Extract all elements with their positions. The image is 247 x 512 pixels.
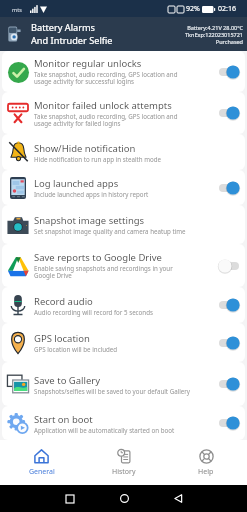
staticText: Include launched apps in history report — [34, 190, 149, 198]
staticText: Take snapshot, audio recording, GPS loca… — [34, 70, 191, 86]
staticText: Snapshots/selfies will be saved to your … — [34, 387, 191, 395]
staticText: 02:16 — [218, 4, 236, 14]
button[interactable]: Switch on — [217, 376, 241, 392]
staticText: Take snapshot, audio recording, GPS loca… — [34, 112, 191, 128]
staticText: Save to Gallery — [34, 374, 101, 387]
button[interactable]: Switch on — [217, 297, 241, 313]
button[interactable]: Log launched apps — [2, 170, 245, 205]
button[interactable]: Switch off — [217, 258, 241, 274]
staticText: Application will be automatically starte… — [34, 426, 175, 434]
staticText: Hide notification to run app in stealth … — [34, 155, 162, 163]
staticText: Enable saving snapshots and recordings i… — [34, 264, 191, 280]
button[interactable]: Switch on — [217, 180, 241, 196]
staticText: Set snapshot image quality and camera he… — [34, 227, 186, 235]
staticText: History — [112, 467, 136, 477]
staticText: And Intruder Selfie — [31, 34, 113, 47]
staticText: Audio recording will record for 5 second… — [34, 308, 153, 316]
button[interactable]: General — [0, 440, 83, 485]
button[interactable]: Recents — [43, 495, 97, 503]
button[interactable]: Save to Gallery — [2, 362, 245, 406]
staticText: Purchased — [215, 38, 243, 45]
button[interactable]: Snapshot image settings — [2, 205, 245, 244]
staticText: 92% — [186, 4, 200, 14]
staticText: Help — [198, 467, 214, 477]
button[interactable]: Switch on — [217, 335, 241, 351]
button[interactable]: GPS location — [2, 323, 245, 362]
staticText: Start on boot — [34, 413, 93, 426]
button[interactable]: Switch on — [217, 64, 241, 80]
button[interactable]: Save reports to Google Drive — [2, 244, 245, 287]
staticText: Snapshot image settings — [34, 214, 145, 227]
staticText: mts — [12, 6, 22, 13]
staticText: Battery:4.21V 28.00°C — [187, 24, 243, 31]
staticText: Monitor regular unlocks — [34, 57, 142, 70]
button[interactable]: Back — [151, 494, 205, 503]
button[interactable]: History — [83, 440, 165, 485]
button[interactable]: Monitor regular unlocks — [2, 51, 245, 92]
button[interactable]: Start on boot — [2, 406, 245, 440]
staticText: TknExp:122023015721 — [185, 31, 243, 38]
button[interactable]: Switch on — [217, 105, 241, 121]
button[interactable]: Help — [165, 440, 247, 485]
button[interactable]: Monitor failed unlock attempts — [2, 92, 245, 134]
staticText: Record audio — [34, 295, 93, 308]
staticText: Log launched apps — [34, 177, 119, 190]
staticText: Monitor failed unlock attempts — [34, 99, 172, 112]
staticText: Show/Hide notification — [34, 142, 136, 155]
button[interactable]: Record audio — [2, 287, 245, 323]
staticText: Save reports to Google Drive — [34, 251, 162, 264]
button[interactable]: Home — [97, 494, 151, 503]
staticText: GPS location — [34, 332, 90, 345]
staticText: Battery Alarms — [31, 21, 95, 34]
button[interactable]: Switch on — [217, 415, 241, 431]
staticText: GPS location will be included — [34, 345, 118, 353]
button[interactable]: Show/Hide notification — [2, 134, 245, 170]
staticText: General — [29, 467, 55, 477]
